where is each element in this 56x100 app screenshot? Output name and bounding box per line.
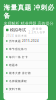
staticText: 模考大赛 排行榜 [9,71,31,75]
staticText: 每日一练 打卡 [9,55,28,59]
button[interactable]: 模考大赛 排行榜 [3,69,48,77]
staticText: 2.3万人在学 [28,31,45,34]
button[interactable]: 历年真题 2015-2024 [3,37,48,45]
staticText: 历年真题 2015-2024 [9,39,39,43]
staticText: 名师解析 精准押题 高效提分 [3,21,53,26]
staticText: 错题本 [9,63,18,67]
staticText: 2024 最新考纲 全真模拟 [6,34,27,41]
button[interactable]: 名师视频课程 [3,77,48,85]
staticText: 章节强化练习 [9,47,27,51]
button[interactable]: 每日一练 打卡 [3,53,48,61]
button[interactable]: 资料下载 [3,85,48,93]
staticText: 海量真题 冲刺必备 [3,3,54,20]
button[interactable]: 章节强化练习 [3,45,48,53]
staticText: 模拟考试 [10,27,26,32]
button[interactable]: 错题本 [3,61,48,69]
staticText: 资料下载 [9,87,21,91]
staticText: 名师视频课程 [9,79,27,83]
